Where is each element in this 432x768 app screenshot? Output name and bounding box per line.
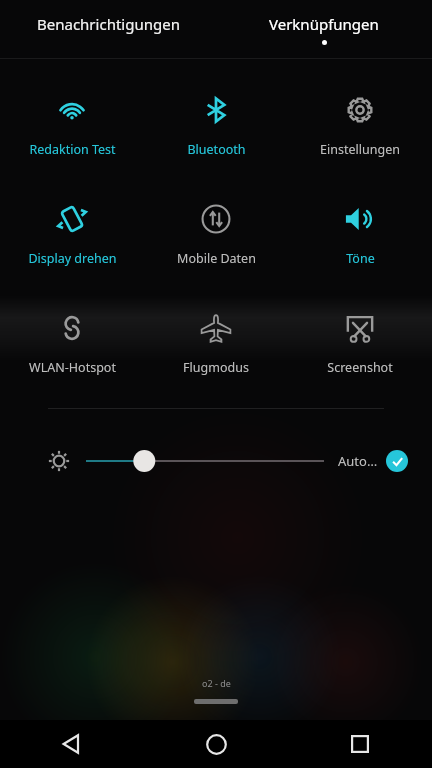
staticText: Display drehen — [28, 250, 117, 267]
button[interactable]: Flugmodus — [144, 305, 288, 376]
staticText: Redaktion Test — [29, 141, 116, 158]
button[interactable]: Home — [144, 720, 288, 768]
staticText: Benachrichtigungen — [37, 14, 180, 34]
button[interactable]: Brightness — [44, 446, 74, 476]
button[interactable]: Redaktion Test — [0, 87, 144, 158]
button[interactable]: Back — [0, 720, 144, 768]
staticText: Verknüpfungen — [269, 14, 379, 34]
button[interactable]: Töne — [288, 196, 432, 267]
button[interactable]: Verknüpfungen — [216, 0, 432, 58]
button[interactable]: Screenshot — [288, 305, 432, 376]
staticText: o2 - de — [202, 677, 231, 689]
staticText: Screenshot — [327, 359, 393, 376]
staticText: Bluetooth — [187, 141, 246, 158]
button[interactable]: Auto… — [338, 441, 408, 481]
button[interactable]: Display drehen — [0, 196, 144, 267]
staticText: Einstellungen — [320, 141, 400, 158]
button[interactable]: Recent apps — [288, 720, 432, 768]
button[interactable] — [86, 441, 324, 481]
staticText: Auto… — [338, 452, 378, 470]
staticText: Töne — [346, 250, 375, 267]
button[interactable]: WLAN-Hotspot — [0, 305, 144, 376]
staticText: Flugmodus — [183, 359, 249, 376]
button[interactable]: Benachrichtigungen — [0, 0, 216, 58]
button[interactable]: Einstellungen — [288, 87, 432, 158]
staticText: Mobile Daten — [177, 250, 256, 267]
button[interactable]: Drag handle — [194, 699, 238, 704]
button[interactable]: Mobile Daten — [144, 196, 288, 267]
staticText: WLAN-Hotspot — [29, 359, 116, 376]
button[interactable]: Bluetooth — [144, 87, 288, 158]
